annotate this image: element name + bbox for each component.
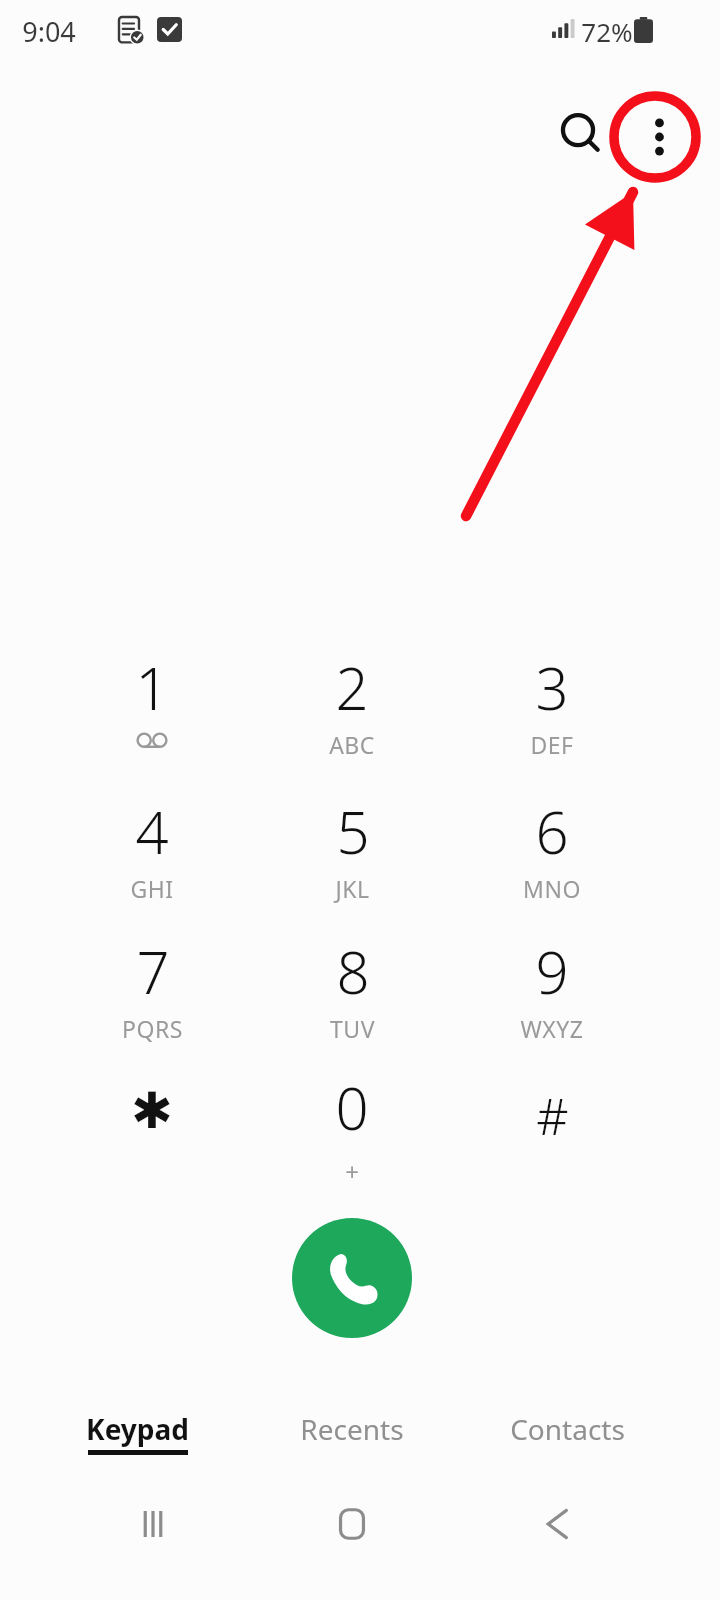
button[interactable]: 8 xyxy=(272,932,432,1060)
button[interactable]: Keypad xyxy=(37,1398,237,1468)
staticText: TUV xyxy=(330,1013,375,1044)
button[interactable]: Contacts xyxy=(467,1398,667,1468)
button[interactable]: 0 xyxy=(272,1068,432,1196)
staticText: JKL xyxy=(335,873,370,904)
button[interactable]: 3 xyxy=(472,648,632,776)
button[interactable]: ✱ xyxy=(72,1068,232,1196)
button[interactable]: Back xyxy=(521,1493,583,1555)
staticText: 2 xyxy=(335,648,369,727)
button[interactable]: Recents xyxy=(252,1398,452,1468)
button[interactable]: 5 xyxy=(272,792,432,920)
staticText: PQRS xyxy=(122,1013,183,1044)
staticText: GHI xyxy=(130,873,174,904)
staticText: Keypad xyxy=(86,1410,189,1448)
button[interactable]: 9 xyxy=(472,932,632,1060)
staticText: # xyxy=(536,1082,569,1150)
staticText: + xyxy=(345,1155,359,1188)
staticText: Recents xyxy=(300,1410,404,1448)
button[interactable]: Recent apps xyxy=(122,1493,184,1555)
staticText: MNO xyxy=(523,873,581,904)
staticText: ABC xyxy=(329,729,375,760)
staticText: WXYZ xyxy=(520,1013,584,1044)
staticText: 1 xyxy=(135,648,169,727)
staticText: 72% xyxy=(581,14,633,49)
staticText: 5 xyxy=(336,792,370,871)
button[interactable]: More options xyxy=(623,105,687,169)
button[interactable]: Search xyxy=(546,100,610,164)
staticText: 8 xyxy=(336,932,370,1011)
staticText: DEF xyxy=(530,729,574,760)
button[interactable]: 4 xyxy=(72,792,232,920)
staticText: 6 xyxy=(535,792,569,871)
staticText: 0 xyxy=(335,1068,369,1147)
staticText: Contacts xyxy=(510,1410,625,1448)
staticText: 3 xyxy=(535,648,569,727)
button[interactable]: # xyxy=(472,1068,632,1196)
staticText: 4 xyxy=(135,792,169,871)
staticText: 9:04 xyxy=(22,13,76,50)
button[interactable]: 2 xyxy=(272,648,432,776)
button[interactable]: Call xyxy=(292,1218,412,1338)
staticText: 9 xyxy=(535,932,569,1011)
staticText: 7 xyxy=(136,932,170,1011)
button[interactable]: Home xyxy=(321,1493,383,1555)
staticText: ✱ xyxy=(131,1082,173,1140)
button[interactable]: 6 xyxy=(472,792,632,920)
button[interactable]: 7 xyxy=(72,932,232,1060)
button[interactable]: 1 xyxy=(72,648,232,776)
